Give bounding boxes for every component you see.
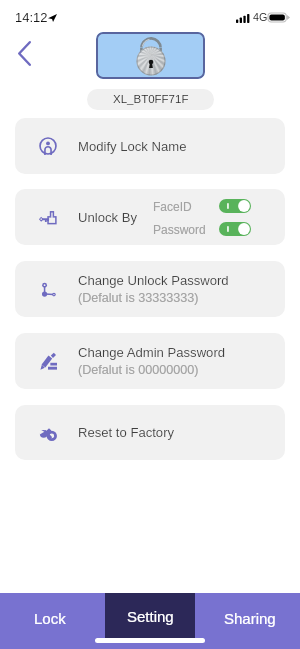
staticText: FaceID xyxy=(153,200,192,213)
button[interactable]: Toggle Password xyxy=(219,222,251,236)
staticText: Modify Lock Name xyxy=(78,139,187,154)
button[interactable]: XL_BT0FF71F xyxy=(87,89,214,110)
staticText: Password xyxy=(153,223,206,236)
button[interactable]: Unlock By xyxy=(15,189,285,245)
staticText: Lock xyxy=(34,610,66,627)
button[interactable]: Reset to Factory xyxy=(15,405,285,460)
staticText: XL_BT0FF71F xyxy=(113,93,189,106)
button[interactable]: Back xyxy=(7,36,41,70)
staticText: Change Admin Password xyxy=(78,345,226,360)
button[interactable]: Toggle FaceID xyxy=(219,199,251,213)
button[interactable]: Change Admin Password xyxy=(15,333,285,389)
staticText: Unlock By xyxy=(78,210,137,225)
button[interactable]: Lock xyxy=(0,593,100,649)
staticText: Setting xyxy=(127,608,174,625)
staticText: 4G xyxy=(253,11,268,23)
staticText: (Defalut is 33333333) xyxy=(78,291,199,305)
staticText: (Defalut is 00000000) xyxy=(78,363,199,377)
button[interactable]: Setting xyxy=(105,593,195,638)
staticText: 14:12 xyxy=(15,10,48,25)
button[interactable]: Sharing xyxy=(200,593,300,649)
staticText: Sharing xyxy=(224,610,276,627)
button[interactable]: Change Unlock Password xyxy=(15,261,285,317)
button[interactable]: Modify Lock Name xyxy=(15,118,285,174)
staticText: Reset to Factory xyxy=(78,425,175,440)
staticText: Change Unlock Password xyxy=(78,273,229,288)
